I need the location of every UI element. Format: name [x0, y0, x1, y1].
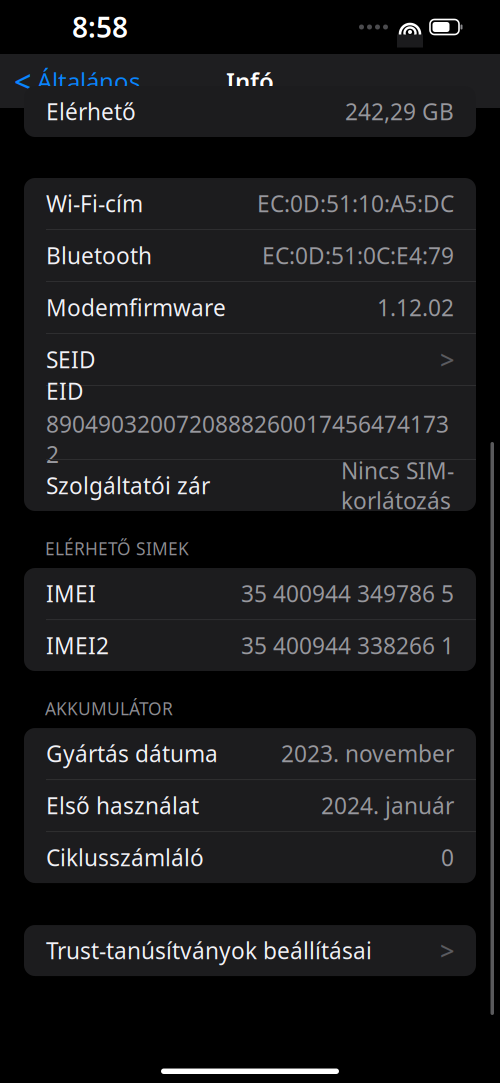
- staticText: 89049032007208882600174564741732: [46, 409, 449, 469]
- staticText: EC:0D:51:0C:E4:79: [262, 240, 454, 270]
- button[interactable]: SEID: [24, 334, 476, 385]
- staticText: <: [14, 61, 32, 101]
- staticText: 242,29 GB: [345, 96, 454, 126]
- staticText: Nincs SIM-korlátozás: [341, 455, 454, 516]
- staticText: Első használat: [46, 790, 199, 821]
- staticText: Általános: [37, 65, 140, 97]
- staticText: Szolgáltatói zár: [46, 470, 210, 500]
- staticText: Modemfirmware: [46, 292, 226, 322]
- staticText: IMEI: [46, 578, 96, 609]
- staticText: SEID: [46, 344, 96, 374]
- staticText: >: [440, 934, 454, 967]
- staticText: 2023. november: [281, 738, 454, 769]
- staticText: EC:0D:51:10:A5:DC: [257, 188, 454, 218]
- staticText: Wi-Fi-cím: [46, 188, 143, 218]
- staticText: Elérhető: [46, 96, 136, 126]
- staticText: Ciklusszámláló: [46, 842, 204, 873]
- staticText: Bluetooth: [46, 240, 152, 270]
- staticText: 2024. január: [321, 790, 454, 821]
- staticText: EID: [46, 376, 84, 406]
- staticText: Gyártás dátuma: [46, 738, 218, 769]
- staticText: 35 400944 338266 1: [241, 630, 454, 661]
- staticText: AKKUMULÁTOR: [45, 697, 173, 720]
- staticText: 35 400944 349786 5: [241, 578, 454, 609]
- staticText: 0: [441, 842, 454, 873]
- staticText: >: [440, 343, 454, 376]
- staticText: Infó: [226, 65, 274, 97]
- staticText: Trust-tanúsítványok beállításai: [46, 935, 372, 966]
- staticText: 1.12.02: [377, 292, 454, 322]
- staticText: 8:58: [72, 8, 128, 46]
- staticText: ELÉRHETŐ SIMEK: [45, 537, 189, 560]
- button[interactable]: Trust-tanúsítványok beállításai: [24, 925, 476, 976]
- staticText: IMEI2: [46, 630, 109, 661]
- button[interactable]: <: [0, 58, 154, 104]
